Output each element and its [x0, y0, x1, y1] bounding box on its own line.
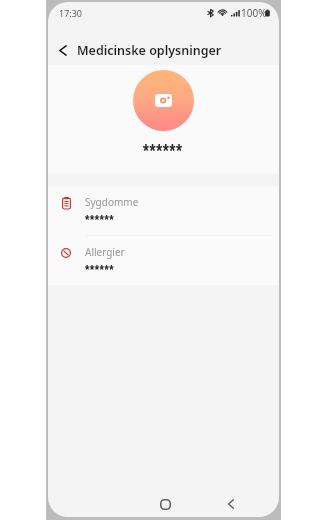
button[interactable]: Allergier [48, 236, 279, 286]
button[interactable]: Back [218, 491, 244, 517]
staticText: 100% [241, 6, 267, 20]
button[interactable]: Back [50, 37, 76, 63]
button[interactable]: Home [152, 491, 178, 517]
button[interactable]: Change profile photo [133, 70, 194, 131]
staticText: Sygdomme [85, 195, 139, 209]
staticText: Medicinske oplysninger [77, 42, 222, 59]
button[interactable]: Sygdomme [48, 186, 279, 236]
staticText: Allergier [85, 245, 125, 259]
staticText: 17:30 [59, 7, 83, 19]
